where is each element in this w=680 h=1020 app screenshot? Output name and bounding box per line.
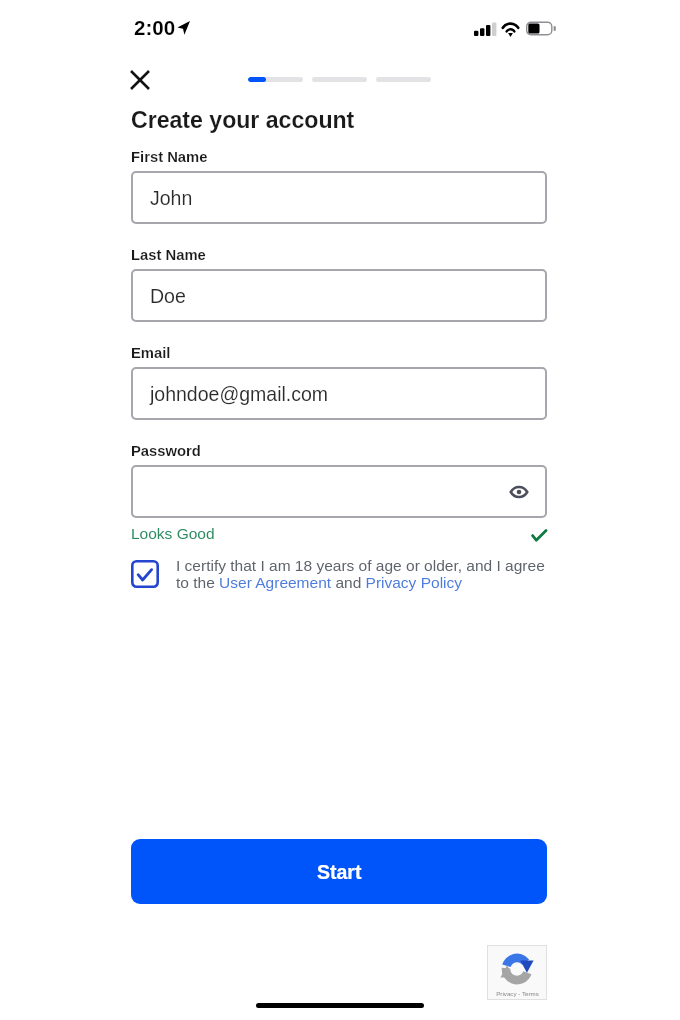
staticText: Looks Good <box>131 525 215 542</box>
button[interactable]: johndoe@gmail.com <box>131 367 547 420</box>
button[interactable]: Show password <box>507 480 531 504</box>
button[interactable]: John <box>131 171 547 224</box>
button[interactable]: Step <box>248 77 303 82</box>
staticText: Password <box>131 443 201 460</box>
staticText: Last Name <box>131 247 206 264</box>
button[interactable]: Doe <box>131 269 547 322</box>
staticText: Create your account <box>131 107 355 133</box>
staticText: Privacy - Terms <box>496 990 539 997</box>
staticText: johndoe@gmail.com <box>150 383 329 405</box>
button[interactable]: Start <box>131 839 547 904</box>
staticText: to the User Agreement and Privacy Policy <box>176 574 463 591</box>
button[interactable]: I certify that I am 18 years of age or o… <box>131 560 159 588</box>
staticText: 2:00 <box>134 16 176 39</box>
staticText: Start <box>317 861 362 883</box>
staticText: John <box>150 187 193 209</box>
staticText: Email <box>131 345 171 362</box>
staticText: Doe <box>150 285 186 307</box>
button[interactable]: Close <box>117 56 163 102</box>
staticText: First Name <box>131 149 208 166</box>
button[interactable]: Show password <box>131 465 547 518</box>
button[interactable]: reCAPTCHA Privacy Terms <box>487 945 547 1000</box>
staticText: I certify that I am 18 years of age or o… <box>176 557 545 574</box>
